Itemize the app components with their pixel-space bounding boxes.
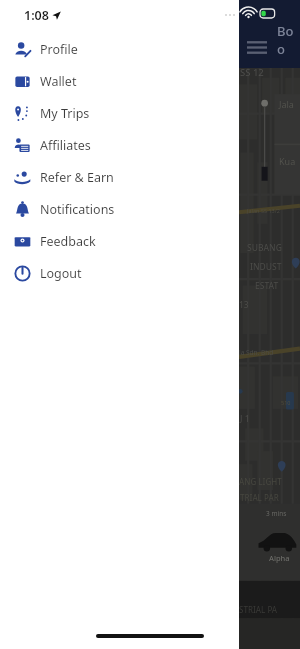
staticText: Feedback xyxy=(40,233,96,250)
staticText: Profile xyxy=(40,41,78,58)
staticText: Wallet xyxy=(40,73,77,90)
button[interactable]: My Trips xyxy=(0,97,239,129)
staticText: Jalan SS 13/2 xyxy=(247,207,280,214)
button[interactable]: Affiliates xyxy=(0,129,239,161)
staticText: ESTAT xyxy=(255,280,279,292)
staticText: SS 12 xyxy=(240,66,264,79)
staticText: Notifications xyxy=(40,201,115,218)
staticText: 1:08 xyxy=(24,7,49,24)
staticText: My Trips xyxy=(40,105,90,122)
button[interactable]: Wallet xyxy=(0,65,239,97)
staticText: 13 xyxy=(239,299,249,311)
staticText: ANG LIGHT xyxy=(239,476,282,487)
staticText: STRIAL PA xyxy=(239,604,278,615)
staticText: SUBANG xyxy=(247,242,282,254)
staticText: INDUST xyxy=(250,261,282,273)
staticText: Affiliates xyxy=(40,137,91,154)
button[interactable]: Notifications xyxy=(0,193,239,225)
staticText: TRIAL PAR xyxy=(240,492,279,503)
button[interactable]: Feedback xyxy=(0,225,239,257)
staticText: J 1 xyxy=(240,413,250,425)
staticText: Boo xyxy=(277,22,300,58)
staticText: 510 xyxy=(281,399,291,406)
button[interactable]: Profile xyxy=(0,33,239,65)
staticText: Refer & Earn xyxy=(40,169,114,186)
staticText: 3 mins xyxy=(266,509,287,518)
button[interactable]: Logout xyxy=(0,257,239,289)
staticText: la Sdn. Bhd xyxy=(239,348,274,357)
button[interactable]: Refer & Earn xyxy=(0,161,239,193)
button[interactable]: Open navigation menu xyxy=(245,35,269,59)
staticText: Logout xyxy=(40,265,82,282)
staticText: Jala xyxy=(279,98,294,110)
staticText: Alpha xyxy=(269,553,290,563)
staticText: Kua xyxy=(279,155,296,167)
